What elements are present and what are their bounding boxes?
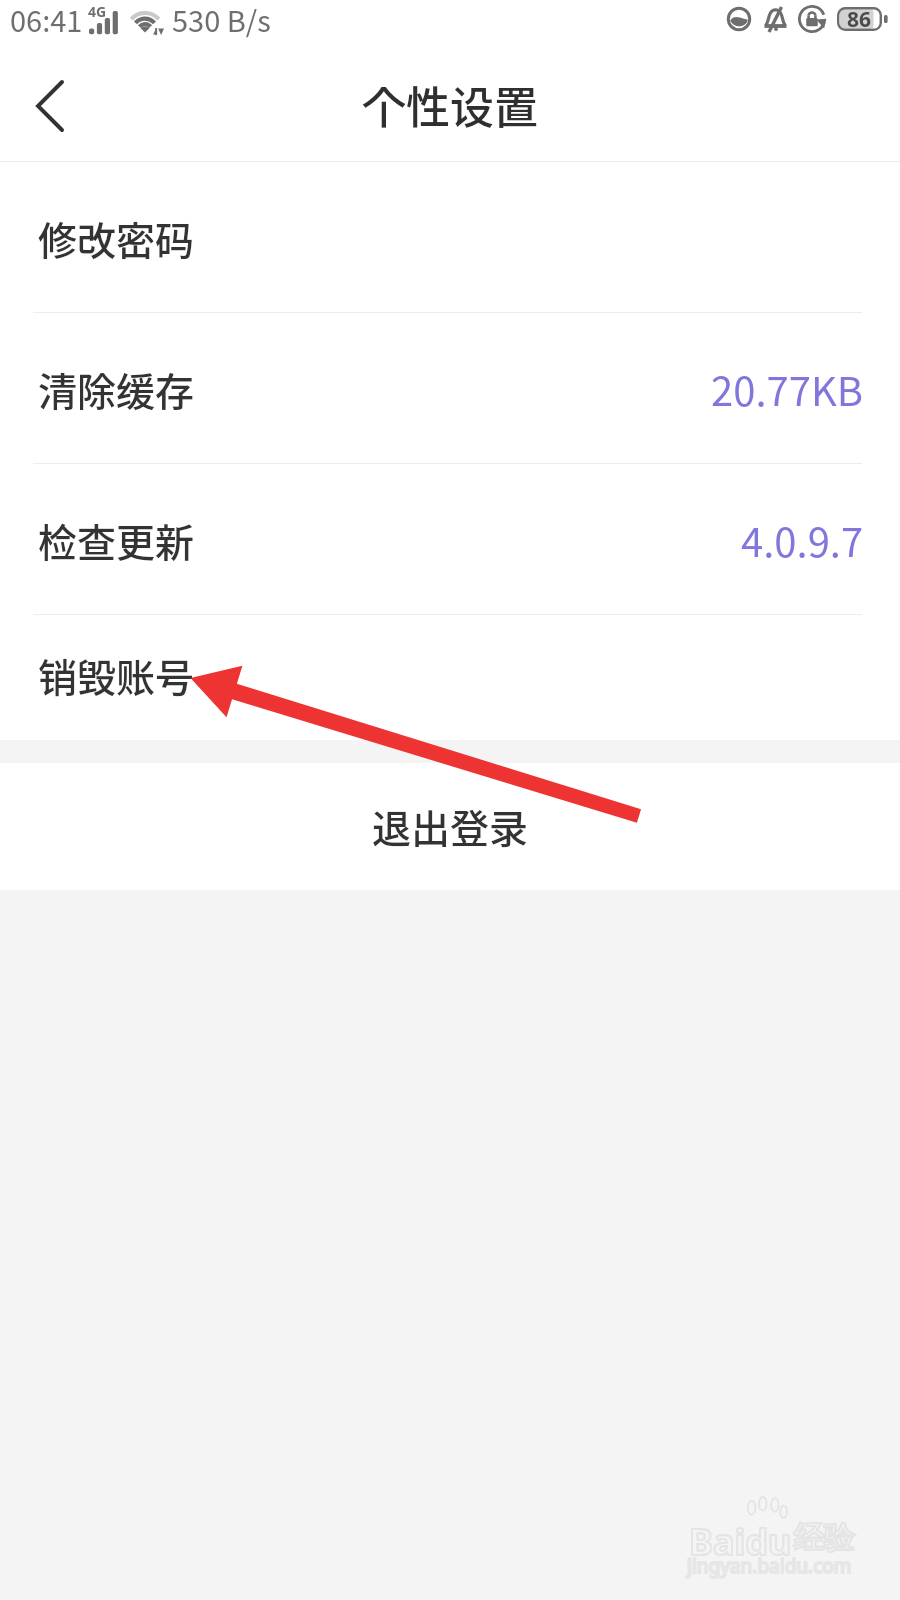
staticText: 个性设置 — [362, 73, 538, 137]
button[interactable]: 修改密码 — [0, 162, 900, 312]
staticText: 4.0.9.7 — [741, 511, 864, 569]
button[interactable]: 退出登录 — [0, 763, 900, 890]
staticText: 530 B/s — [172, 0, 271, 40]
button[interactable]: 清除缓存 — [0, 313, 900, 463]
button[interactable]: 销毁账号 — [0, 615, 900, 740]
staticText: 清除缓存 — [38, 361, 195, 417]
staticText: 经验 — [794, 1519, 854, 1557]
staticText: 修改密码 — [38, 210, 195, 266]
staticText: 退出登录 — [372, 798, 529, 854]
staticText: 销毁账号 — [38, 647, 195, 703]
staticText: 06:41 — [10, 0, 83, 40]
button[interactable]: Back — [0, 55, 100, 162]
staticText: 4G — [88, 2, 107, 21]
staticText: 检查更新 — [38, 512, 195, 568]
staticText: 86 — [847, 5, 872, 31]
staticText: Baidu — [689, 1517, 792, 1566]
staticText: jingyan.baidu.com — [687, 1553, 852, 1579]
staticText: 20.77KB — [711, 360, 864, 418]
button[interactable]: 检查更新 — [0, 464, 900, 614]
